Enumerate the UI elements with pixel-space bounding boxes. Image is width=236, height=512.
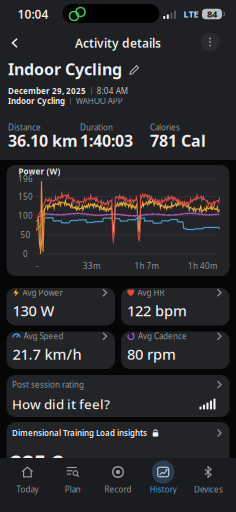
staticText: - [36, 261, 39, 271]
staticText: Distance [8, 122, 41, 133]
staticText: 50 [20, 230, 30, 240]
button[interactable]: Edit title [129, 63, 139, 75]
button[interactable]: Avg Cadence [121, 325, 229, 375]
staticText: 122 bpm [127, 301, 187, 320]
staticText: Today [17, 484, 39, 495]
staticText: Avg HR [137, 287, 164, 298]
staticText: 36.10 km [8, 130, 78, 151]
staticText: Devices [194, 484, 223, 495]
staticText: Post session rating [12, 379, 84, 390]
button[interactable]: Today [5, 458, 50, 500]
staticText: Avg Speed [23, 331, 63, 341]
button[interactable]: Avg Speed [6, 325, 115, 375]
staticText: History [150, 484, 177, 495]
staticText: 10:04 [17, 6, 48, 22]
staticText: WAHOO APP [76, 96, 123, 106]
button[interactable]: Devices [186, 458, 231, 500]
staticText: Avg Cadence [138, 331, 187, 341]
staticText: Power (W) [18, 166, 60, 177]
button[interactable]: Post session rating [6, 372, 229, 420]
staticText: 80 rpm [127, 344, 176, 364]
staticText: 1h 7m [134, 261, 158, 271]
staticText: 84 [207, 8, 217, 20]
staticText: Indoor Cycling [8, 96, 65, 106]
staticText: Avg Power [22, 287, 62, 298]
button[interactable]: Avg Power [6, 282, 115, 332]
staticText: Plan [65, 484, 81, 495]
staticText: Calories [150, 122, 180, 133]
staticText: 100 [18, 210, 33, 221]
button[interactable]: Back [4, 31, 25, 55]
button[interactable]: More options [200, 32, 219, 51]
staticText: Indoor Cycling [8, 58, 122, 80]
staticText: Activity details [75, 35, 161, 51]
staticText: 33m [83, 261, 100, 271]
staticText: 8:04 AM [97, 86, 128, 96]
button[interactable]: Dimensional Training Load insights [6, 422, 229, 486]
staticText: 130 W [12, 301, 54, 320]
button[interactable]: History [141, 458, 186, 500]
staticText: 1:40:03 [80, 130, 133, 151]
button[interactable]: Avg HR [121, 282, 229, 332]
button[interactable]: Plan [50, 458, 95, 500]
staticText: 0 [23, 249, 28, 259]
staticText: 21.7 km/h [12, 344, 81, 364]
staticText: 150 [18, 191, 33, 202]
staticText: 196 [18, 174, 33, 184]
staticText: 781 Cal [150, 130, 206, 151]
staticText: LTE [183, 8, 198, 20]
staticText: December 29, 2025 [8, 86, 86, 96]
staticText: Duration [80, 122, 113, 133]
button[interactable]: Record [95, 458, 141, 500]
staticText: 225.2 [10, 448, 64, 476]
staticText: Dimensional Training Load insights [12, 428, 147, 438]
staticText: How did it feel? [12, 395, 110, 413]
staticText: 1h 40m [188, 261, 217, 271]
staticText: Record [104, 484, 131, 495]
